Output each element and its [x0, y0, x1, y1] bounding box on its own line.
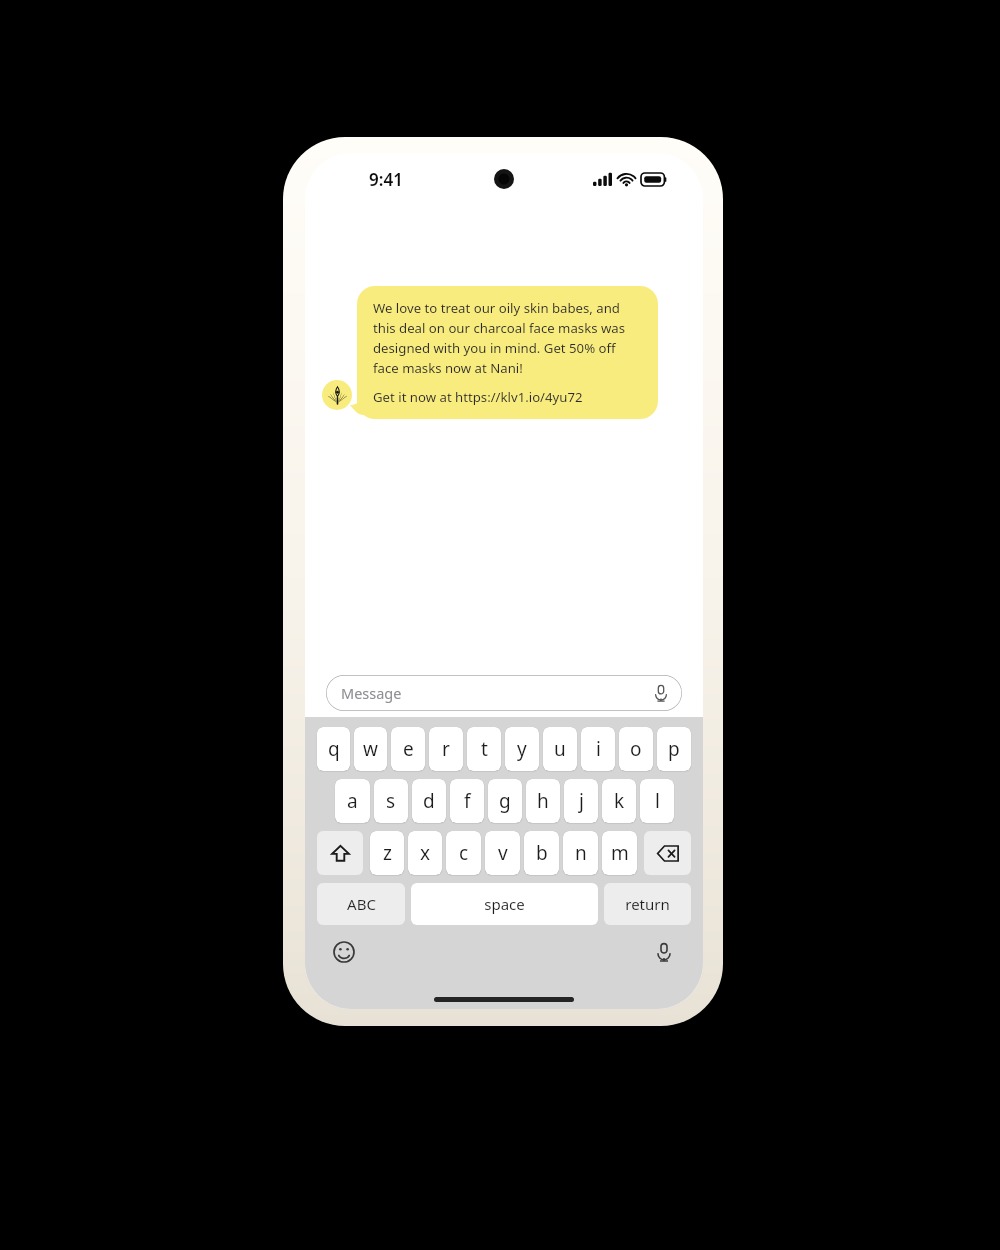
staticText: d — [423, 788, 435, 814]
staticText: x — [420, 840, 431, 866]
staticText: z — [383, 840, 392, 866]
staticText: ABC — [347, 894, 376, 914]
button[interactable]: m — [602, 831, 637, 875]
button[interactable]: h — [526, 779, 560, 823]
staticText: h — [537, 788, 549, 814]
button[interactable]: u — [543, 727, 577, 771]
button[interactable]: We love to treat our oily skin babes, an… — [357, 286, 658, 419]
button[interactable]: r — [429, 727, 463, 771]
staticText: s — [386, 788, 396, 814]
staticText: a — [347, 788, 358, 814]
staticText: t — [481, 736, 488, 762]
staticText: n — [575, 840, 587, 866]
button[interactable]: Backspace — [644, 831, 691, 875]
staticText: We love to treat our oily skin babes, an… — [373, 299, 642, 377]
button[interactable]: o — [619, 727, 653, 771]
button[interactable]: q — [317, 727, 350, 771]
staticText: y — [517, 736, 527, 762]
staticText: k — [614, 788, 625, 814]
button[interactable]: v — [485, 831, 520, 875]
staticText: i — [596, 736, 601, 762]
button[interactable]: j — [564, 779, 598, 823]
button[interactable]: a — [335, 779, 370, 823]
staticText: w — [363, 736, 378, 762]
button[interactable]: i — [581, 727, 615, 771]
staticText: l — [655, 788, 660, 814]
button[interactable]: w — [354, 727, 387, 771]
staticText: c — [459, 840, 469, 866]
staticText: Get it now at https://klv1.io/4yu72 — [373, 388, 583, 406]
button[interactable]: d — [412, 779, 446, 823]
button[interactable]: l — [640, 779, 674, 823]
staticText: return — [625, 894, 670, 914]
button[interactable]: Emoji — [331, 939, 357, 965]
staticText: g — [499, 788, 511, 814]
button[interactable]: Dictate — [652, 684, 670, 702]
staticText: b — [536, 840, 548, 866]
staticText: f — [464, 788, 471, 814]
staticText: u — [554, 736, 566, 762]
button[interactable]: b — [524, 831, 559, 875]
button[interactable]: s — [374, 779, 408, 823]
button[interactable]: g — [488, 779, 522, 823]
staticText: j — [579, 788, 584, 814]
button[interactable]: f — [450, 779, 484, 823]
button[interactable]: Message — [326, 675, 682, 711]
button[interactable]: c — [446, 831, 481, 875]
button[interactable]: e — [391, 727, 425, 771]
staticText: o — [630, 736, 642, 762]
button[interactable]: t — [467, 727, 501, 771]
button[interactable]: x — [408, 831, 442, 875]
button[interactable]: space — [411, 883, 598, 925]
staticText: e — [403, 736, 414, 762]
staticText: m — [611, 840, 629, 866]
button[interactable]: Shift — [317, 831, 363, 875]
staticText: p — [668, 736, 680, 762]
button[interactable]: k — [602, 779, 636, 823]
button[interactable]: Voice input — [651, 939, 677, 965]
staticText: r — [442, 736, 450, 762]
button[interactable]: p — [657, 727, 691, 771]
button[interactable]: ABC — [317, 883, 405, 925]
button[interactable]: n — [563, 831, 598, 875]
staticText: v — [498, 840, 508, 866]
staticText: q — [328, 736, 340, 762]
staticText: space — [484, 894, 525, 914]
staticText: Message — [341, 683, 402, 703]
button[interactable]: return — [604, 883, 691, 925]
button[interactable]: z — [370, 831, 404, 875]
button[interactable]: y — [505, 727, 539, 771]
button[interactable]: Nani avatar — [322, 380, 352, 410]
staticText: 9:41 — [369, 168, 403, 191]
